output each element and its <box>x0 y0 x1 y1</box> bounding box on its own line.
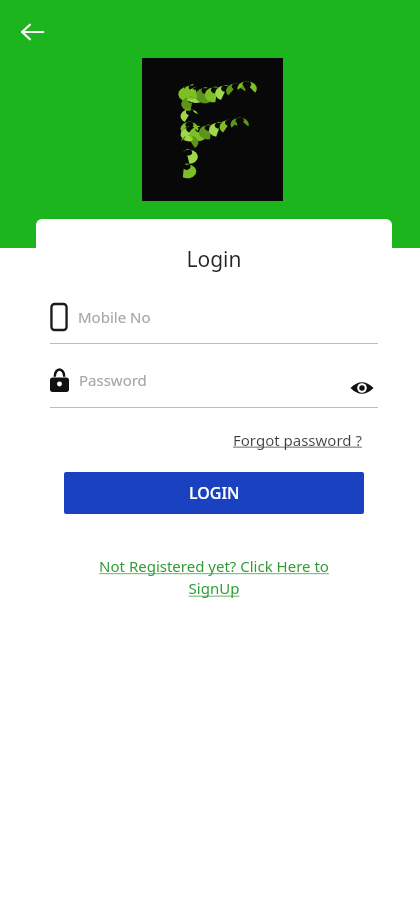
staticText: Forgot password ? <box>233 430 362 450</box>
staticText: Password <box>79 370 147 390</box>
button[interactable]: LOGIN <box>64 472 364 514</box>
staticText: Mobile No <box>78 307 151 327</box>
staticText: Not Registered yet? Click Here to SignUp <box>72 556 356 599</box>
button[interactable]: Not Registered yet? Click Here to SignUp <box>72 556 356 599</box>
staticText: LOGIN <box>189 482 240 504</box>
button[interactable]: Password <box>50 368 378 408</box>
staticText: Login <box>36 245 392 274</box>
button[interactable]: Forgot password ? <box>233 428 362 452</box>
button[interactable]: Back <box>10 10 54 54</box>
button[interactable]: Mobile No <box>50 304 378 344</box>
button[interactable]: Show password <box>346 372 378 404</box>
